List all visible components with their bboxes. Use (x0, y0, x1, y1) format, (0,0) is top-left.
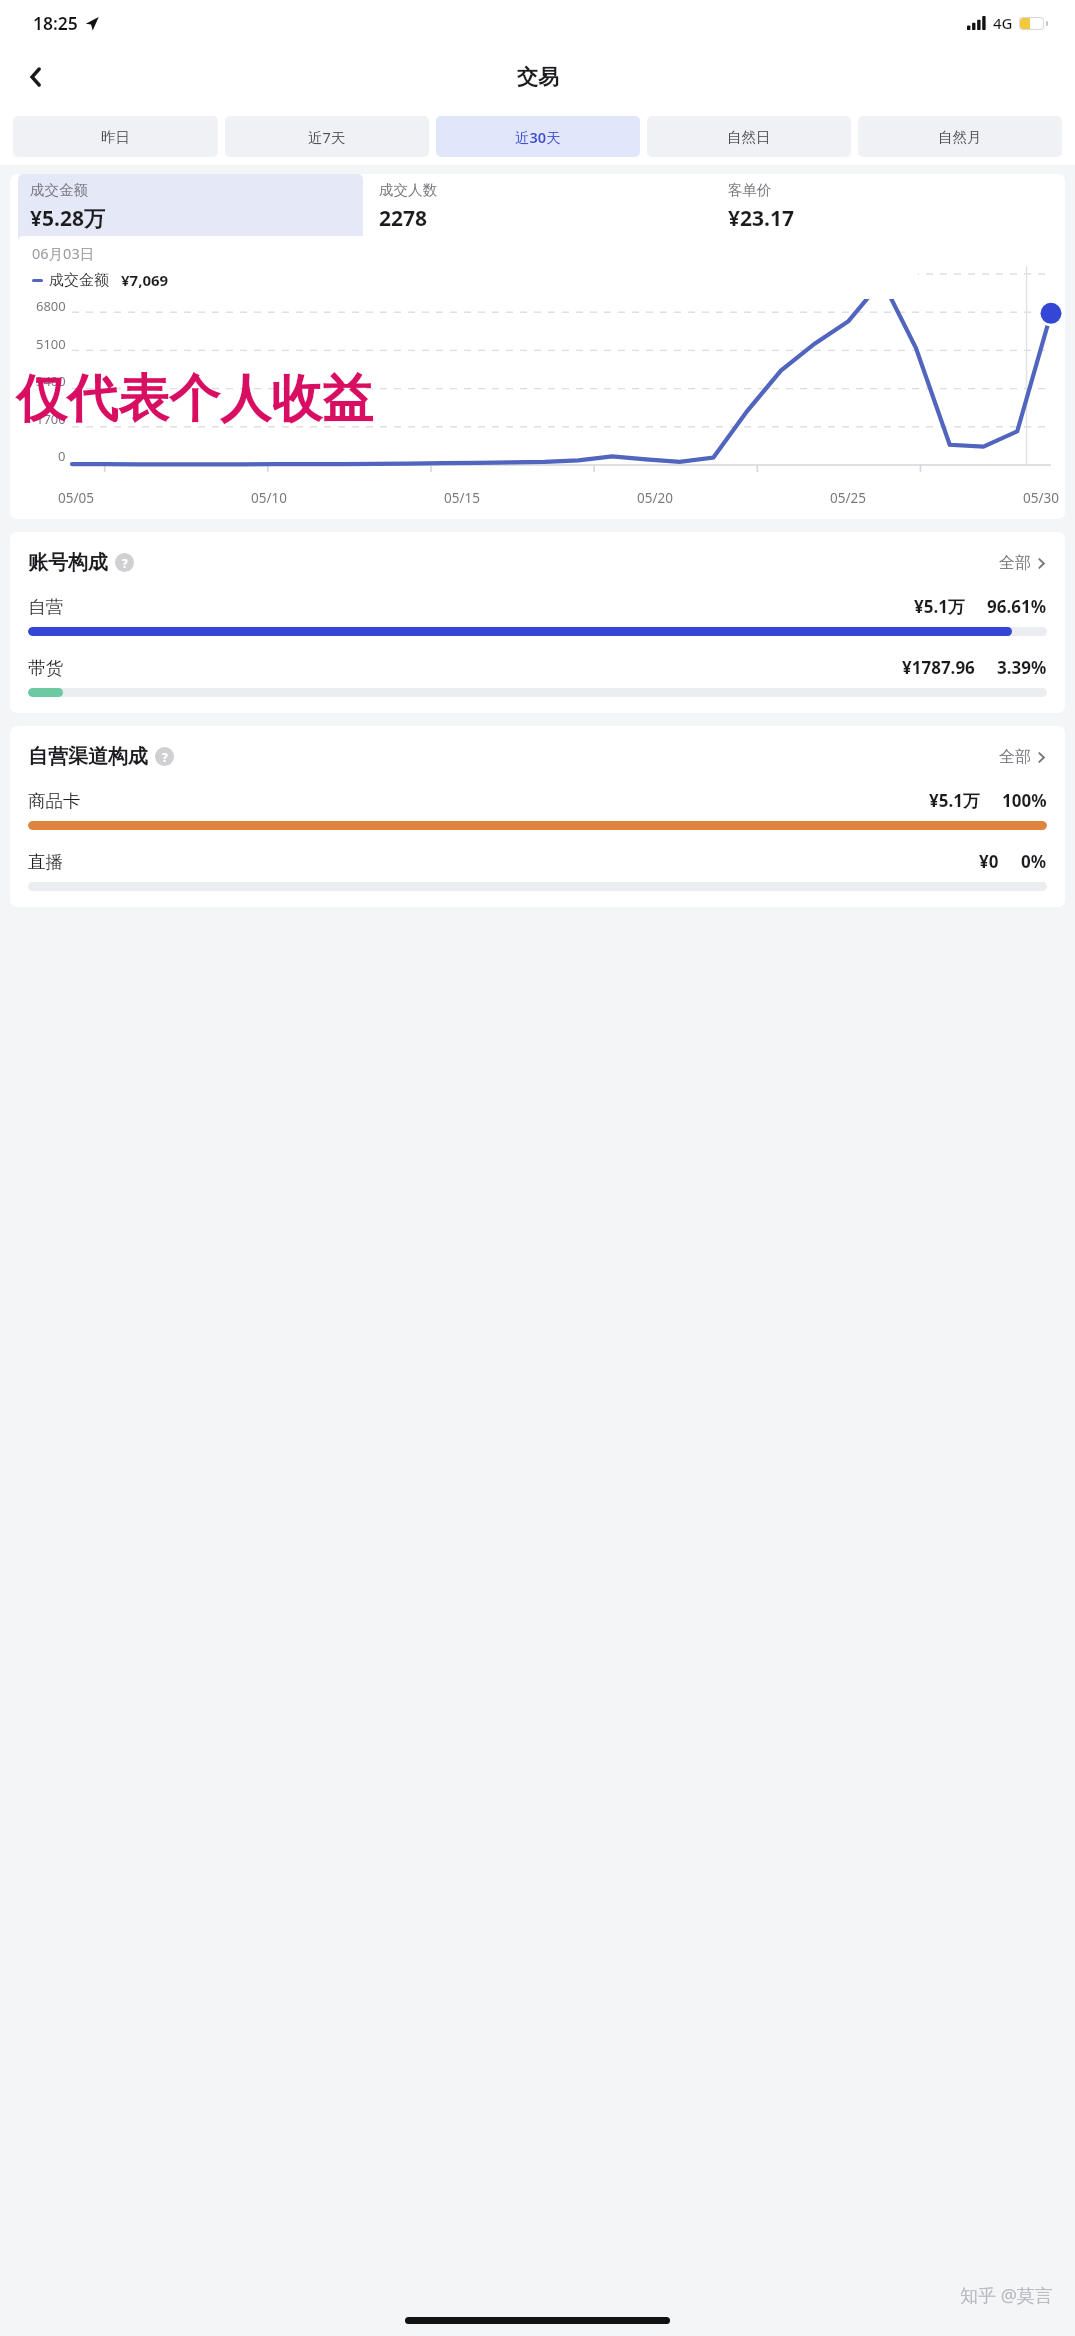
staticText: 自然月 (938, 128, 982, 146)
staticText: 3.39% (997, 656, 1047, 679)
staticText: 仅代表个人收益 (16, 367, 373, 431)
staticText: 较上周期 持平 (30, 240, 102, 254)
staticText: 成交人数 (379, 181, 437, 199)
button[interactable]: 全部 (999, 553, 1047, 573)
staticText: 05/10 (251, 489, 287, 507)
staticText: 自营渠道构成 (28, 744, 148, 769)
staticText: 05/30 (1023, 489, 1059, 507)
staticText: 成交金额 (30, 181, 88, 199)
staticText: 4G (993, 13, 1013, 33)
button[interactable]: 客单价 (716, 174, 1061, 254)
button[interactable]: 成交人数 (367, 174, 712, 254)
staticText: 商品卡 (28, 790, 81, 812)
staticText: 0 (58, 447, 66, 465)
staticText: ? (122, 555, 128, 571)
button[interactable]: 自然月 (858, 116, 1062, 157)
button[interactable]: 自然日 (647, 116, 851, 157)
staticText: ¥0 (979, 850, 999, 873)
staticText: 全部 (999, 553, 1031, 573)
staticText: 交易 (517, 64, 559, 90)
staticText: 自然日 (727, 128, 771, 146)
staticText: 05/20 (637, 489, 673, 507)
button[interactable]: 全部 (999, 747, 1047, 767)
staticText: ¥23.17 (728, 204, 794, 233)
button[interactable]: 近7天 (225, 116, 429, 157)
staticText: 昨日 (101, 128, 130, 146)
staticText: ¥5.28万 (30, 204, 105, 233)
staticText: 近7天 (308, 127, 346, 147)
staticText: 直播 (28, 851, 63, 873)
staticText: 05/25 (830, 489, 866, 507)
button[interactable]: 昨日 (13, 116, 218, 157)
staticText: 客单价 (728, 181, 772, 199)
button[interactable]: 成交金额 (18, 174, 363, 254)
staticText: 06月03日 (32, 243, 95, 263)
staticText: ¥1787.96 (902, 656, 975, 679)
staticText: 近30天 (515, 127, 561, 147)
staticText: 100% (1002, 789, 1047, 812)
staticText: 账号构成 (28, 550, 108, 575)
staticText: 96.61% (987, 595, 1047, 618)
staticText: 05/05 (58, 489, 94, 507)
staticText: ¥5.1万 (914, 595, 965, 618)
staticText: 带货 (28, 657, 63, 679)
staticText: 2278 (379, 204, 428, 233)
button[interactable]: 近30天 (436, 116, 640, 157)
staticText: 1700 (36, 410, 66, 428)
staticText: 18:25 (33, 11, 78, 35)
staticText: 0% (1021, 850, 1047, 873)
staticText: 8500 (36, 260, 66, 278)
staticText: 成交金额 (49, 271, 109, 290)
staticText: ¥7,069 (121, 270, 169, 290)
staticText: 05/15 (444, 489, 480, 507)
button[interactable]: Help (155, 747, 174, 766)
staticText: 全部 (999, 747, 1031, 767)
staticText: 5100 (36, 335, 66, 353)
staticText: 3400 (36, 372, 66, 390)
button[interactable]: Back (12, 53, 60, 101)
staticText: 6800 (36, 297, 66, 315)
staticText: 自营 (28, 596, 63, 618)
staticText: 知乎 @莫言 (960, 2283, 1053, 2308)
staticText: ? (162, 749, 168, 765)
button[interactable]: Help (115, 553, 134, 572)
staticText: ¥5.1万 (929, 789, 980, 812)
